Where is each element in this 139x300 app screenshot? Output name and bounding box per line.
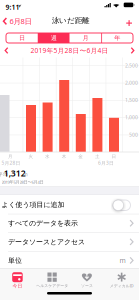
- staticText: 土: [95, 154, 100, 159]
- staticText: 1,500: [125, 97, 138, 103]
- staticText: 木: [62, 154, 67, 159]
- button[interactable]: よく使う項目に追加: [113, 200, 130, 210]
- staticText: 6月3日: [98, 160, 114, 166]
- staticText: 1,000: [125, 114, 138, 121]
- staticText: 9:11: [5, 2, 19, 12]
- button[interactable]: 今日: [0, 269, 35, 290]
- button[interactable]: 月: [69, 33, 101, 43]
- button[interactable]: データソースとアクセス: [0, 233, 139, 251]
- staticText: 火: [28, 154, 33, 159]
- staticText: 水: [45, 154, 50, 159]
- staticText: 500: [129, 131, 138, 138]
- staticText: 6月8日: [10, 16, 32, 26]
- staticText: 日: [19, 34, 25, 42]
- staticText: よく使う項目に追加: [1, 200, 64, 209]
- button[interactable]: ソース: [69, 269, 104, 290]
- staticText: 平均: [0, 171, 8, 177]
- staticText: 2,000: [125, 79, 138, 86]
- staticText: 2019年5月28日〜6月4日: [30, 46, 108, 55]
- staticText: メディカルID: [110, 283, 134, 288]
- staticText: ソース: [81, 283, 93, 288]
- button[interactable]: 単位: [0, 251, 139, 270]
- staticText: 2,500: [125, 62, 138, 69]
- staticText: 泳いだ距離: [52, 16, 89, 25]
- staticText: 金: [78, 154, 83, 159]
- staticText: m: [119, 256, 125, 265]
- button[interactable]: ヘルスケアデータ: [35, 269, 70, 290]
- staticText: 2019年5月28日〜6月4日: [1, 179, 43, 185]
- staticText: 月: [82, 34, 88, 42]
- staticText: 1,312: [4, 167, 26, 179]
- staticText: 5月28日: [1, 160, 20, 166]
- button[interactable]: メディカルID: [104, 269, 139, 290]
- staticText: 月: [8, 154, 13, 159]
- staticText: 単位: [8, 256, 22, 265]
- staticText: 年: [114, 34, 120, 42]
- button[interactable]: Add Data Point: [126, 20, 132, 26]
- staticText: データソースとアクセス: [8, 237, 85, 246]
- staticText: 日: [111, 154, 116, 159]
- staticText: 週: [51, 34, 57, 42]
- button[interactable]: Previous Week: [4, 47, 8, 54]
- button[interactable]: Next Week: [130, 47, 134, 54]
- staticText: m: [23, 171, 27, 178]
- staticText: 今日: [12, 283, 22, 289]
- button[interactable]: 週: [38, 33, 70, 43]
- button[interactable]: 年: [101, 33, 133, 43]
- button[interactable]: Back: [3, 16, 32, 26]
- button[interactable]: 日: [6, 33, 37, 43]
- staticText: ヘルスケアデータ: [36, 283, 68, 288]
- staticText: すべてのデータを表示: [8, 219, 78, 228]
- button[interactable]: すべてのデータを表示: [0, 214, 139, 233]
